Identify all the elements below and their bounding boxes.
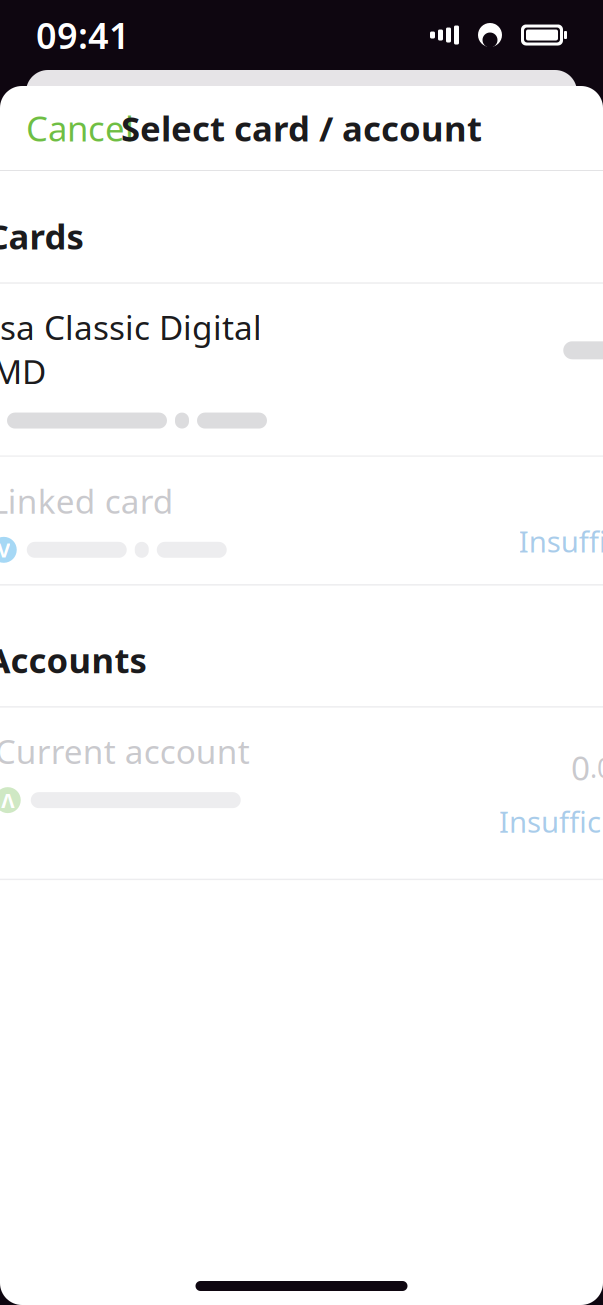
- staticText: 0: [571, 745, 590, 790]
- staticText: Λ: [1, 787, 14, 813]
- staticText: Insufficient: [519, 521, 603, 560]
- staticText: Insufficient: [499, 802, 603, 841]
- staticText: .00: [590, 750, 603, 785]
- button[interactable]: Cancel: [0, 91, 160, 165]
- staticText: Cancel: [26, 105, 134, 151]
- button[interactable]: Current account: [0, 707, 603, 879]
- staticText: Cards: [0, 213, 83, 259]
- button[interactable]: Visa Classic Digital AMD: [0, 283, 603, 455]
- staticText: Linked card: [0, 479, 174, 523]
- staticText: V: [0, 537, 10, 563]
- staticText: Visa Classic Digital AMD: [0, 305, 262, 393]
- staticText: Select card / account: [121, 105, 482, 151]
- button[interactable]: Linked card: [0, 457, 603, 585]
- staticText: Current account: [0, 729, 250, 773]
- staticText: 09:41: [36, 11, 130, 59]
- staticText: Accounts: [0, 637, 146, 683]
